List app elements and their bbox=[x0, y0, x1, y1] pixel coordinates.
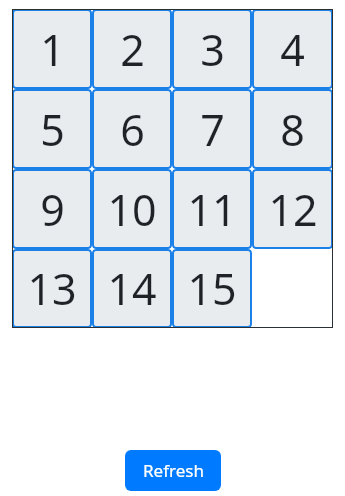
staticText: 4 bbox=[280, 20, 305, 79]
button[interactable]: Refresh bbox=[125, 450, 221, 491]
button[interactable]: 10 bbox=[92, 169, 172, 249]
button[interactable]: 14 bbox=[92, 249, 172, 328]
button[interactable]: 13 bbox=[12, 249, 92, 328]
staticText: 11 bbox=[187, 180, 237, 239]
staticText: 12 bbox=[268, 180, 318, 239]
button[interactable]: 15 bbox=[172, 249, 252, 328]
button[interactable]: 1 bbox=[12, 9, 92, 89]
staticText: 13 bbox=[27, 259, 77, 318]
button[interactable]: 12 bbox=[252, 169, 333, 249]
button[interactable]: 5 bbox=[12, 89, 92, 169]
staticText: 14 bbox=[107, 259, 157, 318]
staticText: 9 bbox=[40, 180, 65, 239]
button[interactable]: Empty slot bbox=[252, 249, 333, 328]
staticText: 2 bbox=[120, 20, 145, 79]
button[interactable]: 11 bbox=[172, 169, 252, 249]
staticText: 7 bbox=[200, 100, 225, 159]
staticText: Refresh bbox=[143, 459, 204, 482]
button[interactable]: 6 bbox=[92, 89, 172, 169]
staticText: 3 bbox=[200, 20, 225, 79]
button[interactable]: 7 bbox=[172, 89, 252, 169]
staticText: 6 bbox=[120, 100, 145, 159]
button[interactable]: 3 bbox=[172, 9, 252, 89]
button[interactable]: 8 bbox=[252, 89, 333, 169]
button[interactable]: 9 bbox=[12, 169, 92, 249]
staticText: 1 bbox=[40, 20, 65, 79]
button[interactable]: 4 bbox=[252, 9, 333, 89]
button[interactable]: 2 bbox=[92, 9, 172, 89]
staticText: 5 bbox=[40, 100, 65, 159]
staticText: 8 bbox=[280, 100, 305, 159]
staticText: 15 bbox=[187, 259, 237, 318]
staticText: 10 bbox=[107, 180, 157, 239]
